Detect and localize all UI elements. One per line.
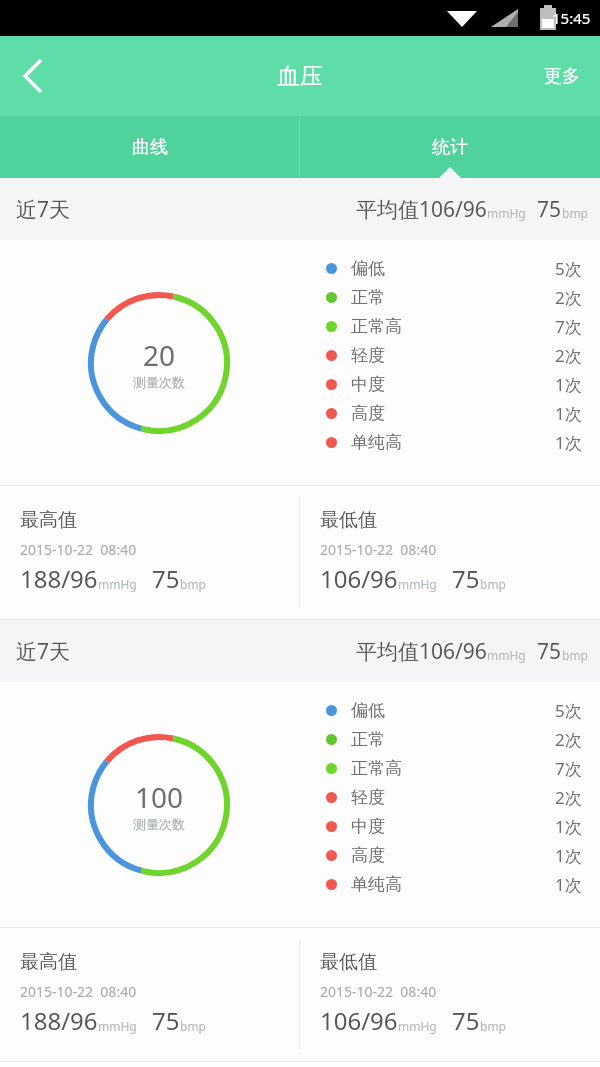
staticText: 中度	[351, 374, 385, 395]
staticText: 更多	[544, 65, 580, 88]
button[interactable]: 更多	[524, 47, 600, 106]
staticText: 75	[537, 195, 562, 224]
staticText: mmHg	[98, 1018, 137, 1034]
staticText: mmHg	[487, 647, 526, 663]
staticText: 100	[135, 778, 184, 816]
staticText: mmHg	[487, 205, 526, 221]
staticText: 2015-10-22 08:40	[20, 982, 137, 1001]
button[interactable]: 最高值	[0, 486, 299, 619]
button[interactable]: Back	[0, 43, 66, 109]
staticText: 高度	[351, 403, 385, 424]
staticText: 1次	[555, 873, 582, 896]
staticText: 15:45	[552, 8, 591, 28]
staticText: 测量次数	[133, 374, 185, 390]
staticText: 106/96	[320, 562, 398, 595]
staticText: 轻度	[351, 345, 385, 366]
staticText: 测量次数	[133, 816, 185, 832]
staticText: 轻度	[351, 787, 385, 808]
staticText: 75	[537, 637, 562, 666]
staticText: 1次	[555, 815, 582, 838]
staticText: 2015-10-22 08:40	[320, 982, 437, 1001]
staticText: 2次	[555, 344, 582, 367]
staticText: 正常高	[351, 758, 402, 779]
staticText: 75	[152, 1004, 180, 1037]
staticText: 正常高	[351, 316, 402, 337]
staticText: bmp	[562, 647, 588, 663]
staticText: 近7天	[16, 195, 71, 224]
staticText: 2次	[555, 728, 582, 751]
staticText: 2015-10-22 08:40	[320, 540, 437, 559]
staticText: 近7天	[16, 637, 71, 666]
button[interactable]: 最高值	[0, 928, 299, 1061]
button[interactable]: 曲线	[0, 116, 299, 178]
staticText: 1次	[555, 402, 582, 425]
staticText: 曲线	[132, 136, 168, 159]
staticText: 最高值	[20, 950, 77, 974]
button[interactable]: 高度	[318, 841, 582, 870]
staticText: 1次	[555, 373, 582, 396]
button[interactable]: 正常高	[318, 312, 582, 341]
button[interactable]: 轻度	[318, 783, 582, 812]
staticText: 1次	[555, 844, 582, 867]
button[interactable]: 偏低	[318, 254, 582, 283]
staticText: 2次	[555, 786, 582, 809]
staticText: 偏低	[351, 258, 385, 279]
staticText: 平均值106/96	[356, 637, 487, 666]
staticText: 高度	[351, 845, 385, 866]
button[interactable]: 最低值	[300, 928, 600, 1061]
button[interactable]: 正常	[318, 283, 582, 312]
staticText: 1次	[555, 431, 582, 454]
staticText: bmp	[480, 1018, 506, 1034]
staticText: 单纯高	[351, 874, 402, 895]
button[interactable]: 高度	[318, 399, 582, 428]
staticText: 188/96	[20, 562, 98, 595]
staticText: 188/96	[20, 1004, 98, 1037]
staticText: 平均值106/96	[356, 195, 487, 224]
staticText: 血压	[277, 62, 323, 91]
button[interactable]: 中度	[318, 812, 582, 841]
staticText: 最低值	[320, 508, 377, 532]
button[interactable]: 最低值	[300, 486, 600, 619]
staticText: 正常	[351, 287, 385, 308]
staticText: mmHg	[398, 1018, 437, 1034]
button[interactable]: 中度	[318, 370, 582, 399]
staticText: 单纯高	[351, 432, 402, 453]
staticText: bmp	[480, 576, 506, 592]
staticText: bmp	[562, 205, 588, 221]
button[interactable]: 轻度	[318, 341, 582, 370]
staticText: 偏低	[351, 700, 385, 721]
button[interactable]: 单纯高	[318, 428, 582, 457]
staticText: 5次	[555, 257, 582, 280]
button[interactable]: 偏低	[318, 696, 582, 725]
staticText: 2015-10-22 08:40	[20, 540, 137, 559]
staticText: mmHg	[398, 576, 437, 592]
staticText: 最低值	[320, 950, 377, 974]
staticText: 5次	[555, 699, 582, 722]
button[interactable]: 正常	[318, 725, 582, 754]
staticText: 7次	[555, 757, 582, 780]
staticText: 20	[143, 336, 176, 374]
staticText: 75	[452, 562, 480, 595]
staticText: 75	[452, 1004, 480, 1037]
staticText: 正常	[351, 729, 385, 750]
staticText: mmHg	[98, 576, 137, 592]
staticText: 75	[152, 562, 180, 595]
staticText: 106/96	[320, 1004, 398, 1037]
button[interactable]: 单纯高	[318, 870, 582, 899]
staticText: 最高值	[20, 508, 77, 532]
staticText: bmp	[180, 576, 206, 592]
staticText: 中度	[351, 816, 385, 837]
staticText: 2次	[555, 286, 582, 309]
button[interactable]: 正常高	[318, 754, 582, 783]
staticText: 统计	[432, 136, 468, 159]
staticText: bmp	[180, 1018, 206, 1034]
staticText: 7次	[555, 315, 582, 338]
button[interactable]: 统计	[300, 116, 600, 178]
